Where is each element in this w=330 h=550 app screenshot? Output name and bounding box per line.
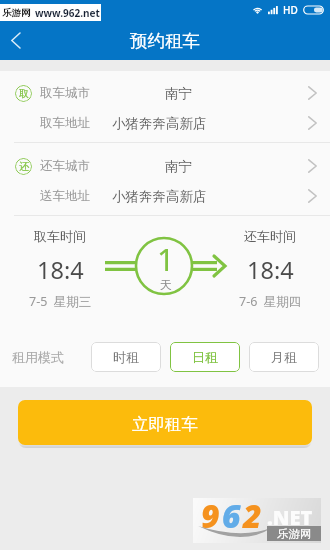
staticText: 预约租车 (130, 30, 200, 52)
staticText: 租用模式 (12, 349, 64, 365)
staticText: www.962.net (35, 6, 100, 20)
staticText: 7-5 星期三 (29, 293, 92, 310)
staticText: 6 (222, 494, 243, 538)
staticText: 南宁 (165, 85, 192, 102)
button[interactable]: 还 (0, 151, 330, 181)
staticText: 取车时间 (34, 228, 86, 244)
staticText: 时租 (113, 349, 139, 365)
staticText: 2 (243, 494, 264, 538)
staticText: 立即租车 (132, 414, 198, 435)
staticText: 南宁 (165, 158, 192, 175)
button[interactable]: 日租 (170, 342, 240, 372)
staticText: 小猪奔奔高新店 (112, 115, 207, 132)
button[interactable]: 取车地址 (0, 108, 330, 138)
staticText: 小猪奔奔高新店 (112, 188, 207, 205)
staticText: 取车地址 (40, 115, 90, 131)
staticText: 还车时间 (244, 228, 296, 244)
staticText: 送车地址 (40, 188, 90, 204)
staticText: 18:4 (37, 254, 84, 286)
staticText: .NET (267, 504, 313, 531)
staticText: 9 (201, 494, 222, 538)
staticText: 取 (19, 87, 29, 100)
button[interactable]: 月租 (249, 342, 319, 372)
button[interactable]: 立即租车 (18, 400, 312, 445)
staticText: 月租 (271, 349, 297, 365)
button[interactable]: 取 (0, 78, 330, 108)
staticText: 还 (19, 160, 29, 173)
button[interactable]: 时租 (91, 342, 161, 372)
staticText: 1 (157, 238, 175, 280)
button[interactable]: 取车时间 (0, 216, 120, 327)
staticText: 天 (160, 277, 172, 292)
staticText: 乐游网 (277, 527, 312, 541)
staticText: 日租 (192, 349, 218, 365)
staticText: HD (283, 3, 298, 17)
staticText: 7-6 星期四 (239, 293, 302, 310)
staticText: 18:4 (247, 254, 294, 286)
staticText: 取车城市 (40, 85, 90, 101)
staticText: 还车城市 (40, 158, 90, 174)
staticText: 乐游网 (2, 7, 31, 19)
button[interactable]: 送车地址 (0, 181, 330, 211)
button[interactable]: Back (0, 26, 31, 57)
button[interactable]: 还车时间 (210, 216, 330, 327)
